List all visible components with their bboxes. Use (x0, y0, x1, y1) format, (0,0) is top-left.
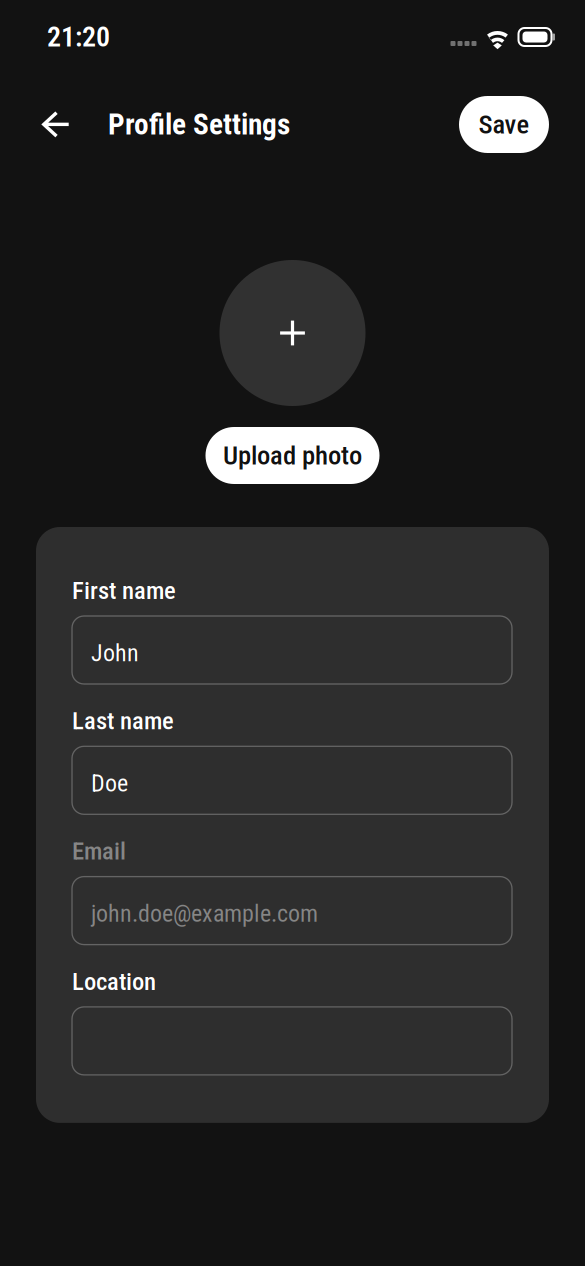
staticText: John (91, 639, 139, 667)
button[interactable]: Back (42, 96, 70, 153)
staticText: Last name (72, 706, 174, 735)
staticText: Save (478, 109, 529, 140)
staticText: First name (72, 576, 176, 605)
staticText: Profile Settings (108, 107, 290, 142)
staticText: Location (72, 967, 156, 996)
staticText: 21:20 (47, 21, 110, 53)
staticText: Upload photo (223, 440, 362, 471)
staticText: Doe (91, 769, 128, 797)
staticText: Email (72, 837, 126, 866)
button[interactable]: Upload photo (205, 427, 379, 484)
button[interactable]: Save (459, 96, 549, 153)
staticText: john.doe@example.com (91, 899, 318, 928)
